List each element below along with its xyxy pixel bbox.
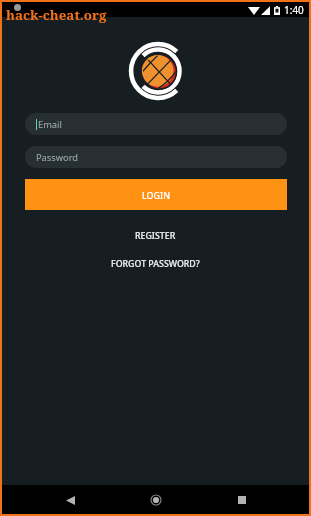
button[interactable]: Email xyxy=(25,113,287,135)
button[interactable]: Recent apps xyxy=(228,486,256,514)
staticText: LOGIN xyxy=(142,189,171,201)
button[interactable]: REGISTER xyxy=(123,226,188,246)
staticText: REGISTER xyxy=(135,230,176,242)
staticText: FORGOT PASSWORD? xyxy=(111,258,200,270)
button[interactable]: Home xyxy=(142,486,170,514)
staticText: Email xyxy=(38,118,62,131)
button[interactable]: FORGOT PASSWORD? xyxy=(99,254,212,274)
staticText: 1:40 xyxy=(284,3,304,17)
staticText: hack-cheat.org xyxy=(6,6,107,24)
staticText: Password xyxy=(36,151,79,164)
button[interactable]: Password xyxy=(25,146,287,168)
button[interactable]: Back xyxy=(56,486,84,514)
button[interactable]: LOGIN xyxy=(25,179,287,210)
